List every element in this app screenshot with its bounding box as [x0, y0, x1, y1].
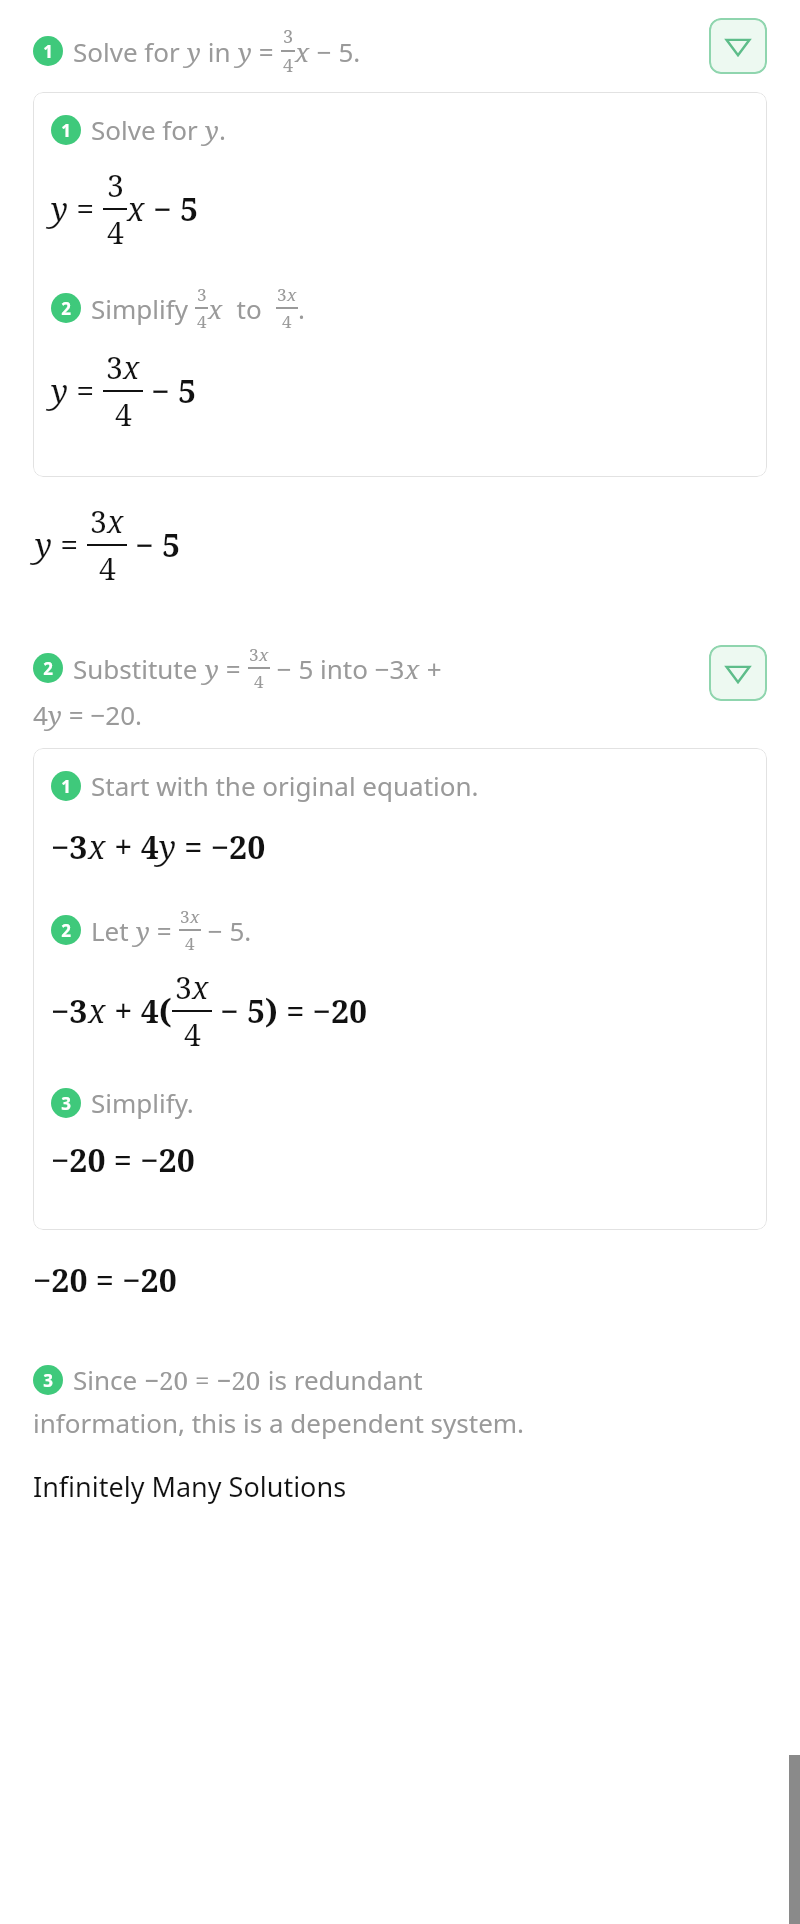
- staticText: − 5: [143, 369, 197, 413]
- staticText: Since: [73, 1362, 144, 1397]
- staticText: 1: [61, 119, 71, 142]
- staticText: Infinitely Many Solutions: [33, 1468, 347, 1505]
- staticText: − 5 into −3: [270, 651, 405, 686]
- staticText: Simplify: [91, 291, 195, 326]
- staticText: 3: [197, 283, 207, 306]
- staticText: − 5.: [201, 913, 252, 948]
- staticText: 4: [197, 310, 207, 333]
- staticText: Solve for: [91, 112, 205, 147]
- staticText: −3: [51, 989, 88, 1033]
- staticText: 4: [283, 53, 294, 78]
- staticText: =: [150, 913, 179, 948]
- staticText: + 4(: [106, 989, 172, 1033]
- staticText: x: [208, 291, 223, 326]
- staticText: =: [68, 187, 103, 231]
- staticText: x: [127, 187, 145, 231]
- staticText: y: [51, 369, 68, 413]
- staticText: 3: [43, 1369, 53, 1392]
- staticText: 1: [43, 40, 53, 63]
- staticText: 2: [61, 919, 71, 942]
- staticText: −3: [51, 825, 88, 869]
- staticText: in: [201, 34, 238, 69]
- staticText: =: [252, 34, 281, 69]
- staticText: information, this is a dependent system.: [33, 1405, 525, 1440]
- staticText: x: [107, 501, 124, 542]
- staticText: 4: [185, 932, 195, 955]
- button[interactable]: 2: [33, 643, 767, 732]
- staticText: − 5) = −20: [212, 989, 368, 1033]
- staticText: x: [192, 967, 209, 1008]
- staticText: 3: [175, 967, 192, 1008]
- staticText: − 5: [127, 523, 181, 567]
- staticText: 3: [180, 905, 190, 928]
- staticText: 4: [184, 1014, 201, 1055]
- button[interactable]: 3: [33, 1362, 767, 1440]
- staticText: 1: [61, 775, 71, 798]
- staticText: + 4: [106, 825, 159, 869]
- staticText: 3: [107, 165, 124, 206]
- staticText: y: [159, 825, 176, 869]
- staticText: .: [298, 291, 305, 326]
- staticText: − 5: [145, 187, 199, 231]
- staticText: 3: [61, 1092, 71, 1115]
- staticText: y: [51, 187, 68, 231]
- staticText: 3: [90, 501, 107, 542]
- staticText: −20 = −20: [51, 1138, 195, 1182]
- staticText: =: [68, 369, 103, 413]
- staticText: 2: [43, 657, 53, 680]
- staticText: 3: [249, 643, 259, 666]
- staticText: 4: [254, 670, 264, 693]
- staticText: = −20: [176, 825, 266, 869]
- staticText: −20 = −20: [144, 1362, 261, 1397]
- staticText: Solve for: [73, 34, 187, 69]
- staticText: .: [219, 112, 226, 147]
- staticText: 4: [282, 310, 292, 333]
- staticText: x: [287, 283, 297, 306]
- staticText: y: [187, 34, 201, 69]
- staticText: y: [205, 651, 219, 686]
- staticText: 4: [99, 548, 116, 589]
- button[interactable]: Collapse step: [709, 645, 767, 701]
- staticText: 4: [115, 394, 132, 435]
- staticText: y: [48, 697, 62, 732]
- staticText: 4: [33, 697, 48, 732]
- staticText: −20 = −20: [33, 1258, 177, 1302]
- staticText: 3: [277, 283, 287, 306]
- button[interactable]: Collapse step: [709, 18, 767, 74]
- staticText: +: [420, 651, 442, 686]
- staticText: Let: [91, 913, 136, 948]
- staticText: to: [223, 291, 276, 326]
- staticText: y: [136, 913, 150, 948]
- staticText: x: [405, 651, 420, 686]
- staticText: − 5.: [310, 34, 361, 69]
- staticText: = −20.: [62, 697, 142, 732]
- staticText: x: [88, 825, 106, 869]
- staticText: 2: [61, 297, 71, 320]
- staticText: 4: [107, 212, 124, 253]
- staticText: x: [259, 643, 269, 666]
- staticText: Start with the original equation.: [91, 768, 479, 803]
- staticText: =: [52, 523, 87, 567]
- staticText: x: [190, 905, 200, 928]
- staticText: x: [88, 989, 106, 1033]
- staticText: 3: [106, 347, 123, 388]
- staticText: x: [123, 347, 140, 388]
- staticText: y: [35, 523, 52, 567]
- staticText: 3: [283, 24, 294, 49]
- button[interactable]: 1: [33, 16, 767, 78]
- staticText: =: [219, 651, 248, 686]
- staticText: x: [295, 34, 310, 69]
- staticText: is redundant: [261, 1362, 423, 1397]
- staticText: y: [205, 112, 219, 147]
- staticText: Simplify.: [91, 1085, 194, 1120]
- staticText: y: [238, 34, 252, 69]
- staticText: Substitute: [73, 651, 205, 686]
